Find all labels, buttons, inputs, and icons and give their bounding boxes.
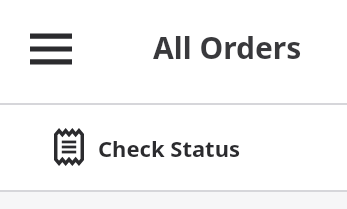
button[interactable]: Open navigation menu bbox=[16, 19, 86, 79]
staticText: Check Status bbox=[98, 133, 241, 163]
staticText: All Orders bbox=[153, 27, 302, 68]
button[interactable]: Check Status bbox=[0, 105, 347, 190]
